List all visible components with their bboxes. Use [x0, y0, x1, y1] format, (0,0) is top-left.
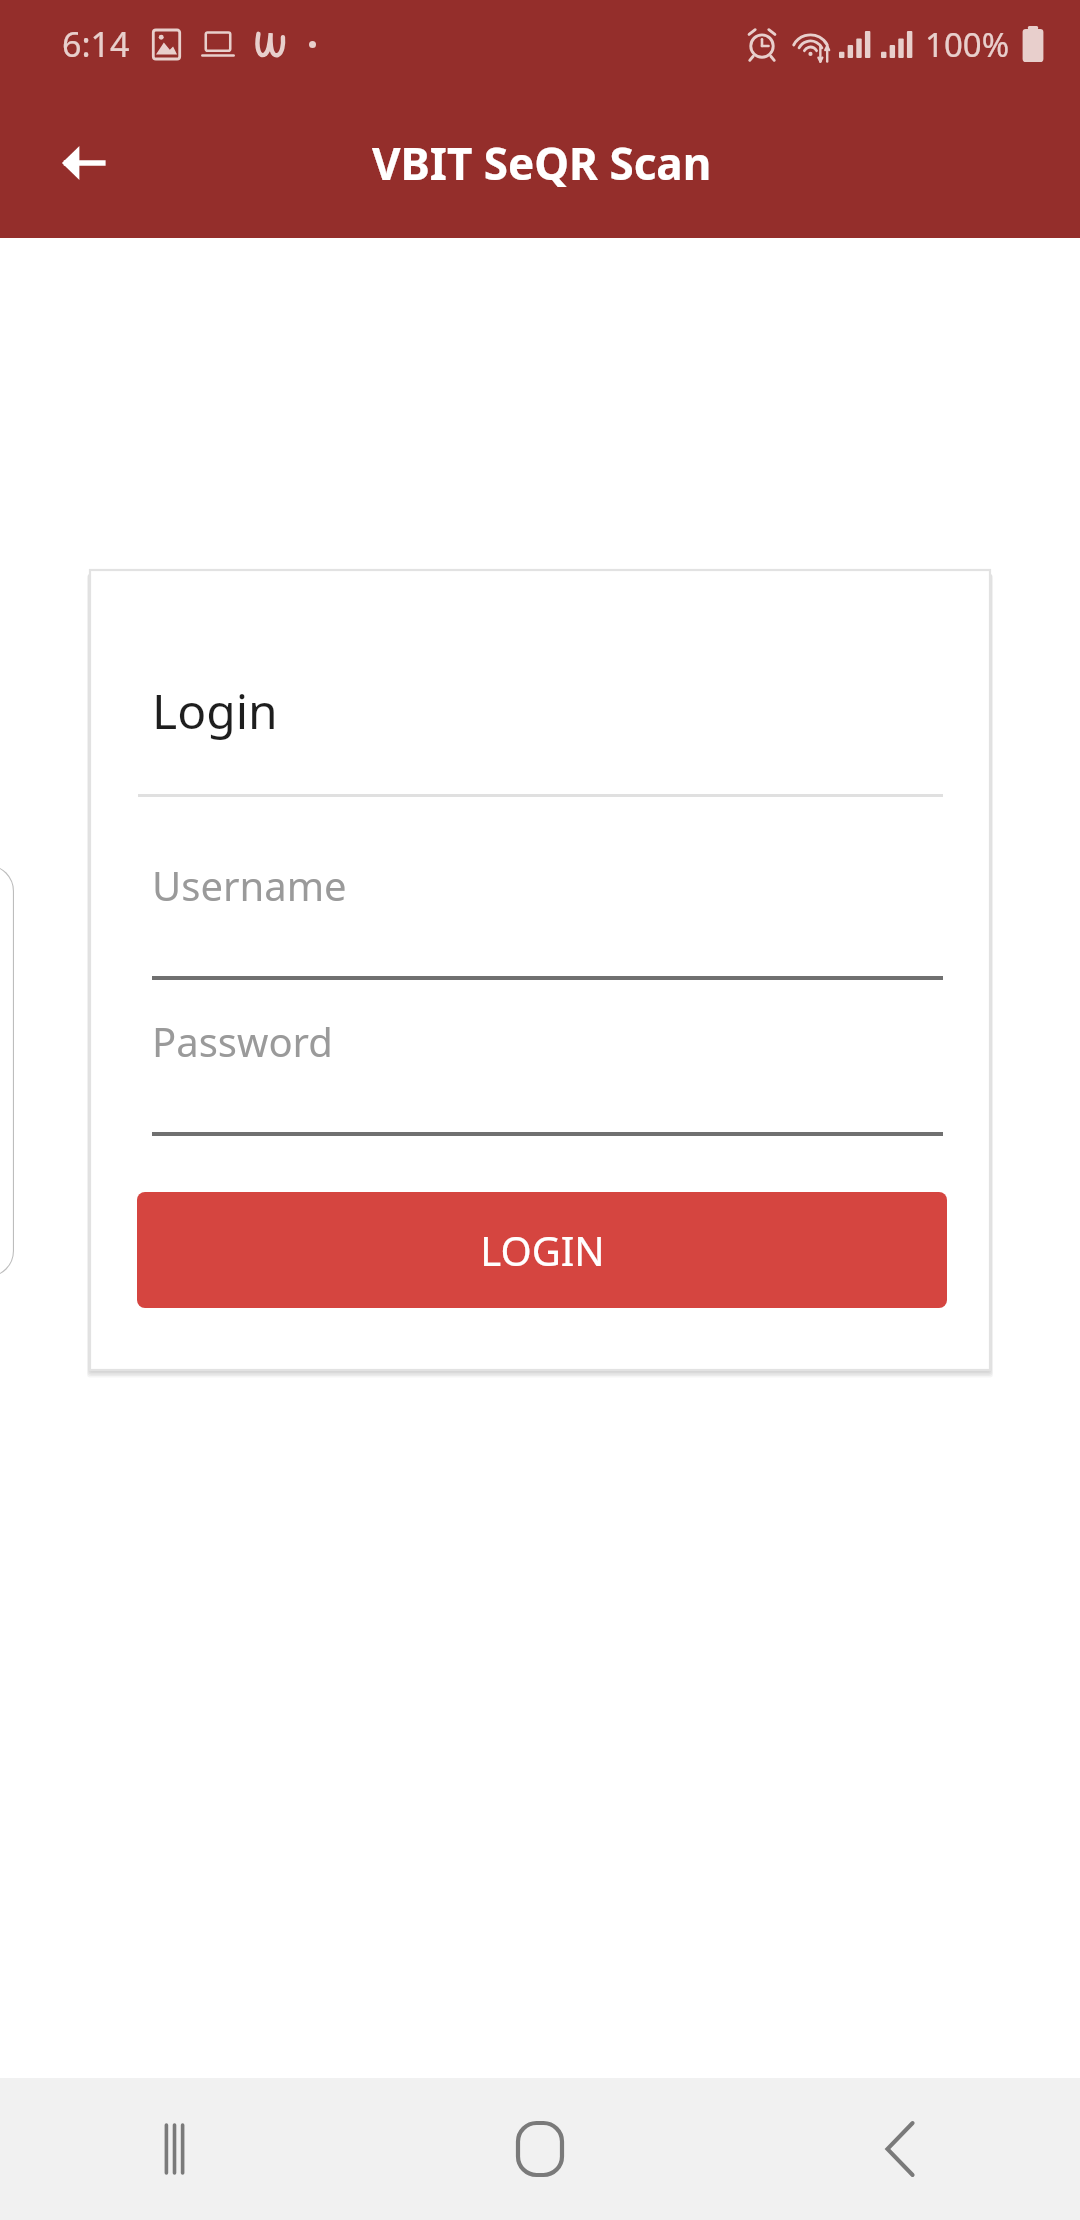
staticText: Password: [152, 1014, 333, 1068]
button[interactable]: Back: [38, 117, 130, 209]
button[interactable]: Password: [138, 988, 943, 1136]
button[interactable]: Username: [138, 832, 943, 980]
button[interactable]: Recent apps: [0, 2078, 360, 2220]
staticText: LOGIN: [480, 1223, 605, 1277]
staticText: VBIT SeQR Scan: [372, 133, 712, 193]
staticText: Login: [152, 678, 278, 743]
button[interactable]: Back: [720, 2078, 1080, 2220]
button[interactable]: LOGIN: [137, 1192, 947, 1308]
staticText: 6:14: [62, 21, 130, 67]
staticText: 100%: [925, 22, 1010, 67]
staticText: Username: [152, 858, 347, 912]
button[interactable]: Home: [360, 2078, 720, 2220]
